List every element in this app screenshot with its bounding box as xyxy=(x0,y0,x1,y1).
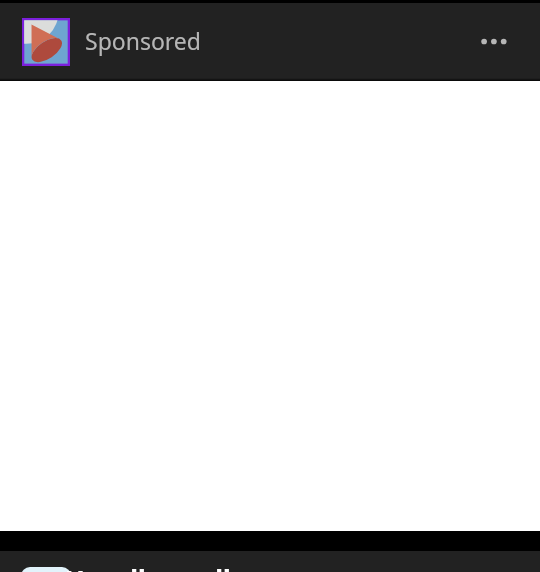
button[interactable]: More options xyxy=(460,18,508,66)
button[interactable]: Advertiser icon xyxy=(22,18,70,66)
staticText: Sponsored xyxy=(85,25,201,56)
staticText: Unsell to sell xyxy=(65,562,231,572)
button[interactable]: Unsell to sell xyxy=(0,551,540,572)
